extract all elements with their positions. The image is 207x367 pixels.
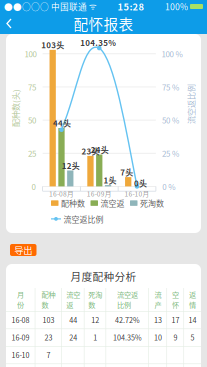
staticText: 配种数 <box>61 197 85 209</box>
staticText: 13 <box>154 314 162 325</box>
staticText: 14 <box>189 314 197 325</box>
staticText: ●●○○○ 中国联通 ᯤ <box>4 0 97 13</box>
staticText: 死淘 数 <box>88 289 102 310</box>
staticText: 死淘数 <box>140 197 164 209</box>
staticText: 16-10月 <box>124 189 149 198</box>
staticText: 100 % <box>161 48 182 60</box>
staticText: 23 <box>45 332 53 342</box>
staticText: 12 <box>91 314 99 325</box>
staticText: 7头 <box>120 166 133 178</box>
staticText: 导出 <box>14 243 32 257</box>
staticText: 24 <box>69 332 77 342</box>
staticText: 9 <box>174 332 178 342</box>
button[interactable]: 导出 <box>10 244 36 256</box>
staticText: 15:28 <box>117 0 144 13</box>
staticText: 25 % <box>162 147 179 159</box>
staticText: 1 <box>93 332 97 342</box>
staticText: 16-08 <box>12 314 30 325</box>
staticText: 100% <box>165 0 188 13</box>
staticText: 23头 <box>81 145 99 157</box>
staticText: 100 <box>24 48 36 60</box>
staticText: 7 <box>47 349 51 360</box>
staticText: 流空返 比例 <box>117 289 138 310</box>
staticText: 配怀报表 <box>73 13 133 34</box>
staticText: 配种 数 <box>42 289 56 310</box>
staticText: 50 % <box>162 114 179 126</box>
staticText: 42.72% <box>115 314 140 325</box>
staticText: 空 怀 <box>172 289 179 310</box>
staticText: 103头 <box>41 39 64 51</box>
staticText: 12头 <box>62 160 80 171</box>
staticText: 月度配种分析 <box>70 268 136 284</box>
staticText: 流 产 <box>154 289 161 310</box>
staticText: 0 % <box>162 181 175 192</box>
staticText: 流空返比例 <box>171 98 207 110</box>
staticText: 103 <box>43 314 55 325</box>
staticText: 75 % <box>162 81 179 93</box>
staticText: 返 情 <box>189 289 196 310</box>
staticText: 50 <box>28 114 36 126</box>
staticText: 16-10 <box>12 349 30 360</box>
staticText: 5 <box>191 332 195 342</box>
staticText: 75 <box>28 81 36 93</box>
staticText: 24头 <box>91 144 109 155</box>
staticText: 16-09月 <box>87 189 112 198</box>
staticText: 44头 <box>53 117 71 129</box>
staticText: 16-09 <box>12 332 30 342</box>
staticText: 104.35% <box>80 37 116 48</box>
button[interactable]: Back <box>0 12 19 35</box>
staticText: 1头 <box>104 174 117 186</box>
staticText: 104.35% <box>113 332 142 342</box>
staticText: 流空返 <box>100 197 124 209</box>
staticText: 流空返比例 <box>63 213 103 225</box>
staticText: 0 <box>31 181 35 192</box>
staticText: 16-08月 <box>49 189 74 198</box>
staticText: 17 <box>172 314 180 325</box>
staticText: 44 <box>69 314 77 325</box>
staticText: 0头 <box>134 177 147 189</box>
staticText: 流空 返 <box>66 289 80 310</box>
staticText: 10 <box>154 332 162 342</box>
staticText: 25 <box>28 147 36 159</box>
staticText: 配种数(头) <box>0 102 34 114</box>
staticText: 月 份 <box>17 289 24 310</box>
